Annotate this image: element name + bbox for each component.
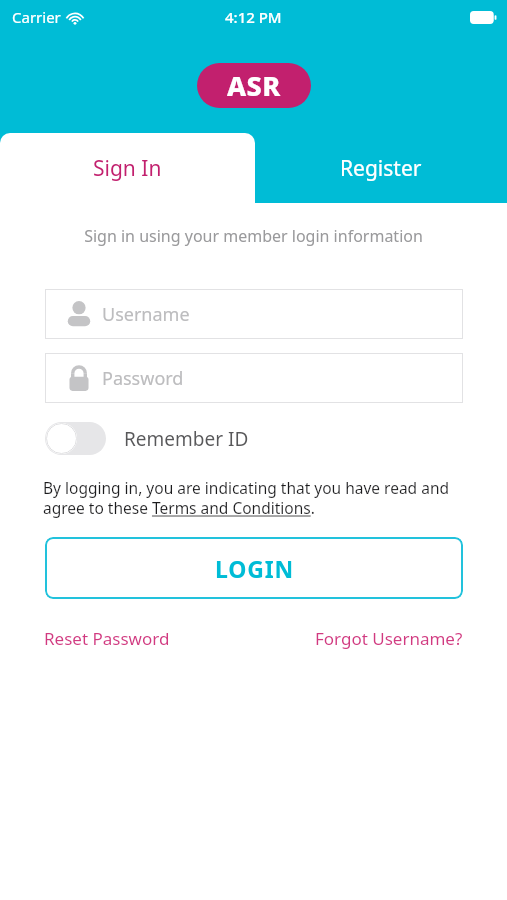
staticText: Sign In (93, 154, 162, 183)
button[interactable]: Reset Password (44, 627, 170, 650)
button[interactable]: Sign In (0, 133, 255, 203)
staticText: ASR (227, 67, 281, 104)
staticText: Register (340, 154, 422, 183)
staticText: Reset Password (44, 627, 170, 650)
staticText: 4:12 PM (225, 7, 282, 27)
staticText: Forgot Username? (315, 627, 463, 650)
button[interactable]: Register (255, 133, 507, 203)
button[interactable]: Forgot Username? (315, 627, 463, 650)
staticText: Carrier (12, 7, 61, 27)
staticText: LOGIN (215, 553, 294, 584)
button[interactable]: LOGIN (45, 537, 463, 599)
button[interactable]: Password (45, 353, 463, 403)
staticText: Username (102, 302, 190, 327)
button[interactable]: Remember ID (45, 422, 249, 455)
staticText: Password (102, 366, 184, 391)
staticText: By logging in, you are indicating that y… (43, 477, 464, 519)
button[interactable]: Username (45, 289, 463, 339)
staticText: Remember ID (124, 426, 249, 452)
staticText: Sign in using your member login informat… (0, 225, 507, 247)
